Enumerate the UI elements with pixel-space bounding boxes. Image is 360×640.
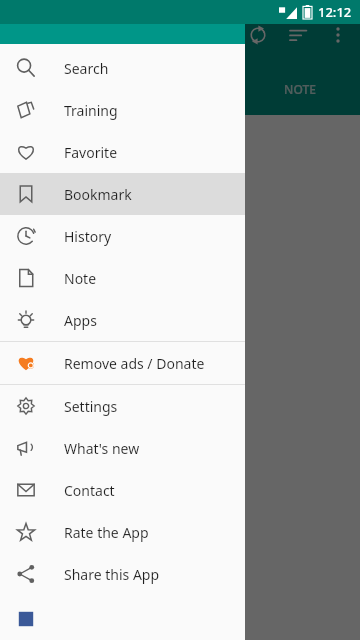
staticText: History	[64, 227, 112, 246]
button[interactable]: Share this App	[0, 553, 245, 595]
staticText: Bookmark	[64, 185, 132, 204]
button[interactable]: Rate the App	[0, 511, 245, 553]
button[interactable]: Settings	[0, 385, 245, 427]
button[interactable]: What's new	[0, 427, 245, 469]
staticText: NOTE	[284, 81, 316, 97]
staticText: Remove ads / Donate	[64, 354, 205, 373]
staticText: Settings	[64, 397, 118, 416]
staticText: Rate the App	[64, 523, 149, 542]
button[interactable]: Contact	[0, 469, 245, 511]
staticText: Favorite	[64, 143, 118, 162]
button[interactable]: Sort	[278, 24, 318, 46]
button[interactable]: Favorite	[0, 131, 245, 173]
button[interactable]: Apps	[0, 299, 245, 341]
button[interactable]: Remove ads / Donate	[0, 342, 245, 384]
button[interactable]: More options	[318, 24, 358, 46]
button[interactable]: Bookmark	[0, 173, 245, 215]
button[interactable]: Note	[0, 257, 245, 299]
button[interactable]: Training	[0, 89, 245, 131]
button[interactable]: Sync	[238, 24, 278, 46]
staticText: Search	[64, 59, 109, 78]
staticText: What's new	[64, 439, 140, 458]
staticText: Contact	[64, 481, 115, 500]
button[interactable]: History	[0, 215, 245, 257]
staticText: Share this App	[64, 565, 160, 584]
button[interactable]: NOTE	[240, 78, 360, 100]
button[interactable]: Search	[0, 47, 245, 89]
staticText: Training	[64, 101, 118, 120]
staticText: Apps	[64, 311, 97, 330]
staticText: Note	[64, 269, 97, 288]
staticText: 12:12	[318, 3, 352, 21]
